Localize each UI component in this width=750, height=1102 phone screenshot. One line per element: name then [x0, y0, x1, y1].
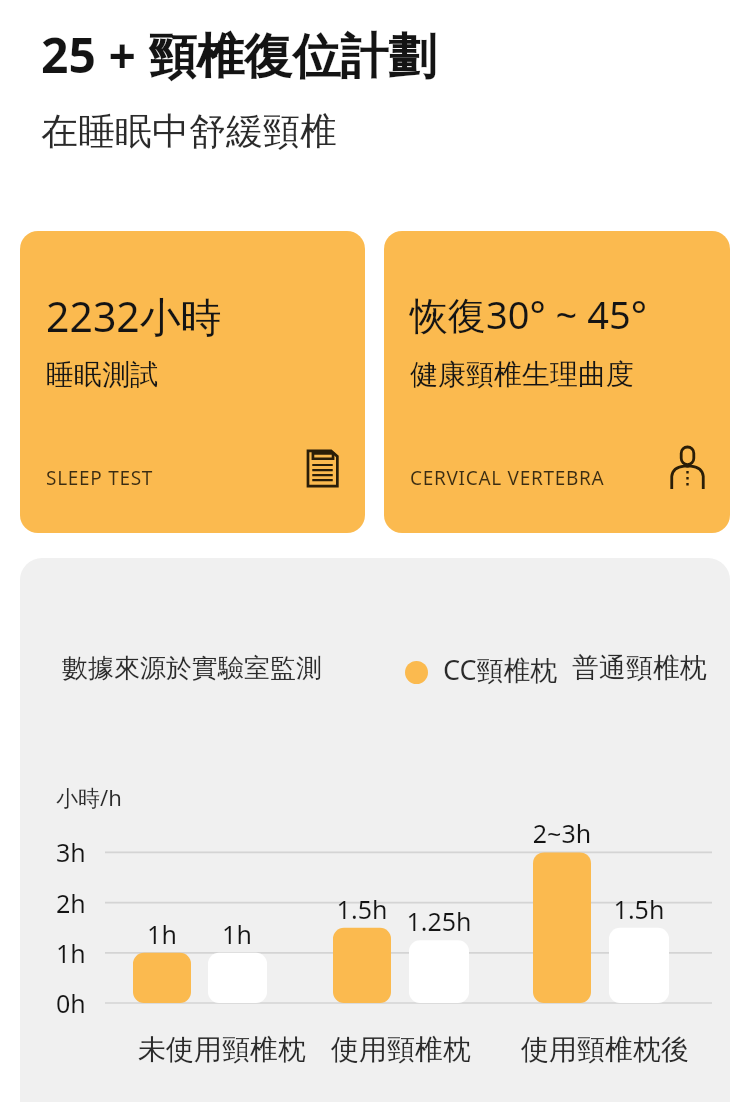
staticText: CC頸椎枕 [443, 651, 558, 688]
staticText: 2h [56, 886, 86, 920]
staticText: 2~3h [517, 816, 607, 850]
staticText: 1h [117, 917, 207, 951]
staticText: 數據來源於實驗室監測 [62, 652, 322, 685]
staticText: 1h [56, 936, 86, 970]
staticText: CERVICAL VERTEBRA [410, 465, 605, 491]
staticText: SLEEP TEST [46, 465, 154, 491]
staticText: 1h [192, 917, 282, 951]
staticText: 健康頸椎生理曲度 [410, 357, 634, 392]
staticText: 睡眠測試 [46, 357, 158, 392]
other: Sleep test report [301, 447, 343, 489]
staticText: 1.5h [594, 892, 684, 926]
staticText: 普通頸椎枕 [572, 651, 707, 685]
staticText: 使用頸椎枕後 [495, 1032, 715, 1067]
staticText: 25 + 頸椎復位計劃 [41, 22, 437, 88]
button[interactable]: 2232小時 [20, 231, 365, 533]
staticText: 1.25h [394, 904, 484, 938]
staticText: 3h [56, 835, 86, 869]
other: Cervical vertebra [666, 447, 708, 489]
staticText: 未使用頸椎枕 [112, 1032, 332, 1067]
staticText: 恢復30° ~ 45° [410, 288, 647, 340]
staticText: 在睡眠中舒緩頸椎 [41, 108, 337, 155]
staticText: 使用頸椎枕 [291, 1032, 511, 1067]
staticText: 2232小時 [46, 288, 222, 344]
staticText: 小時/h [56, 782, 122, 812]
staticText: 0h [56, 986, 86, 1020]
staticText: 1.5h [317, 892, 407, 926]
button[interactable]: 恢復30° ~ 45° [384, 231, 730, 533]
